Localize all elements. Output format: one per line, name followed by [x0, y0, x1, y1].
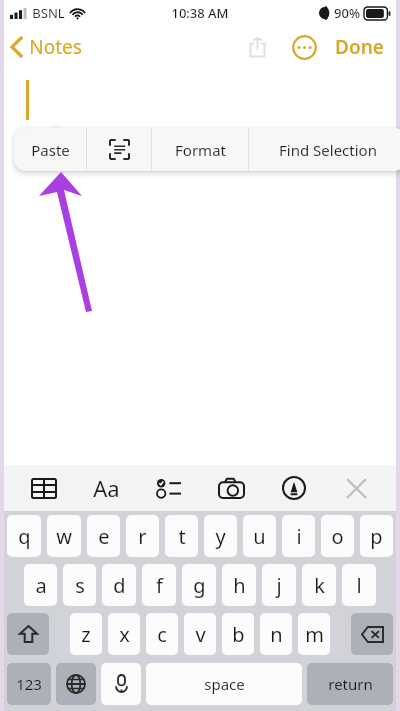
staticText: Format — [175, 140, 226, 160]
staticText: x — [119, 621, 130, 648]
staticText: n — [270, 621, 283, 648]
button[interactable]: Change keyboard — [56, 663, 96, 705]
button[interactable]: b — [222, 613, 254, 655]
button[interactable]: w — [47, 515, 81, 557]
button[interactable]: m — [298, 613, 330, 655]
staticText: r — [138, 523, 147, 550]
button[interactable]: e — [87, 515, 120, 557]
button[interactable]: Format — [152, 128, 248, 171]
button[interactable]: z — [70, 613, 102, 655]
button[interactable]: Shift — [7, 613, 49, 655]
staticText: u — [253, 523, 266, 550]
staticText: w — [56, 523, 72, 550]
staticText: 10:38 AM — [171, 4, 229, 22]
staticText: i — [296, 523, 302, 550]
button[interactable]: y — [204, 515, 237, 557]
button[interactable]: h — [222, 564, 256, 606]
button[interactable]: u — [243, 515, 276, 557]
staticText: l — [356, 572, 362, 599]
staticText: Find Selection — [279, 140, 377, 160]
staticText: q — [18, 523, 31, 550]
staticText: g — [193, 572, 206, 599]
staticText: 123 — [16, 674, 42, 694]
staticText: return — [328, 674, 373, 694]
staticText: b — [232, 621, 245, 648]
staticText: d — [113, 572, 126, 599]
staticText: Aa — [93, 473, 120, 503]
staticText: p — [370, 523, 383, 550]
button[interactable]: r — [126, 515, 159, 557]
staticText: a — [35, 572, 47, 599]
staticText: c — [157, 621, 167, 648]
staticText: z — [81, 621, 91, 648]
staticText: j — [276, 572, 282, 599]
button[interactable]: f — [142, 564, 176, 606]
button[interactable]: Markup — [271, 465, 317, 511]
staticText: s — [75, 572, 85, 599]
staticText: e — [98, 523, 110, 550]
button[interactable]: x — [108, 613, 140, 655]
button[interactable]: Share — [237, 27, 277, 67]
button[interactable]: Paste — [14, 128, 86, 171]
button[interactable]: d — [102, 564, 136, 606]
button[interactable]: j — [262, 564, 296, 606]
button[interactable]: Checklist — [146, 465, 192, 511]
button[interactable]: a — [24, 564, 57, 606]
button[interactable]: k — [302, 564, 336, 606]
staticText: Paste — [31, 140, 70, 160]
button[interactable]: Done — [329, 28, 390, 66]
staticText: k — [314, 572, 325, 599]
button[interactable]: Backspace — [351, 613, 393, 655]
button[interactable]: Camera — [208, 465, 254, 511]
staticText: t — [178, 523, 186, 550]
button[interactable]: Scan Text — [87, 128, 151, 171]
button[interactable]: 123 — [7, 663, 51, 705]
staticText: v — [195, 621, 206, 648]
button[interactable]: Notes — [4, 34, 90, 60]
button[interactable]: v — [184, 613, 216, 655]
button[interactable]: o — [321, 515, 354, 557]
button[interactable]: t — [165, 515, 198, 557]
staticText: space — [204, 674, 245, 694]
staticText: o — [331, 523, 344, 550]
button[interactable]: q — [7, 515, 41, 557]
staticText: Notes — [29, 34, 82, 60]
button[interactable]: Table — [21, 465, 67, 511]
button[interactable]: n — [260, 613, 292, 655]
button[interactable]: Close keyboard — [333, 465, 379, 511]
button[interactable]: g — [182, 564, 216, 606]
button[interactable]: Dictation — [101, 663, 141, 705]
staticText: 90% — [334, 4, 360, 22]
staticText: BSNL — [32, 4, 65, 22]
staticText: y — [215, 523, 226, 550]
button[interactable]: return — [307, 663, 393, 705]
button[interactable]: s — [63, 564, 96, 606]
staticText: m — [305, 621, 324, 648]
staticText: Done — [335, 34, 384, 60]
button[interactable]: Text format — [83, 465, 129, 511]
button[interactable]: Find Selection — [249, 128, 400, 171]
button[interactable]: More options — [285, 28, 323, 66]
button[interactable]: l — [342, 564, 376, 606]
staticText: f — [156, 572, 163, 599]
button[interactable]: c — [146, 613, 178, 655]
button[interactable]: p — [360, 515, 393, 557]
button[interactable]: i — [282, 515, 315, 557]
button[interactable]: space — [146, 663, 302, 705]
staticText: h — [233, 572, 246, 599]
